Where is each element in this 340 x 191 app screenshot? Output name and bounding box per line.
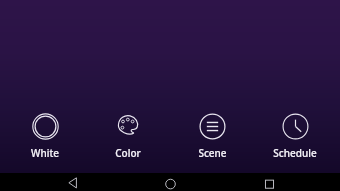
button[interactable]: Recent apps [242,173,296,191]
button[interactable]: Schedule [257,109,333,163]
button[interactable]: Home [143,173,197,191]
staticText: Color [115,146,141,160]
button[interactable]: Color [90,109,166,163]
button[interactable]: Scene [174,109,250,163]
button[interactable]: White [7,109,83,163]
staticText: Schedule [273,146,317,160]
staticText: Scene [198,146,227,160]
staticText: White [31,146,59,160]
button[interactable]: Back [45,173,99,191]
